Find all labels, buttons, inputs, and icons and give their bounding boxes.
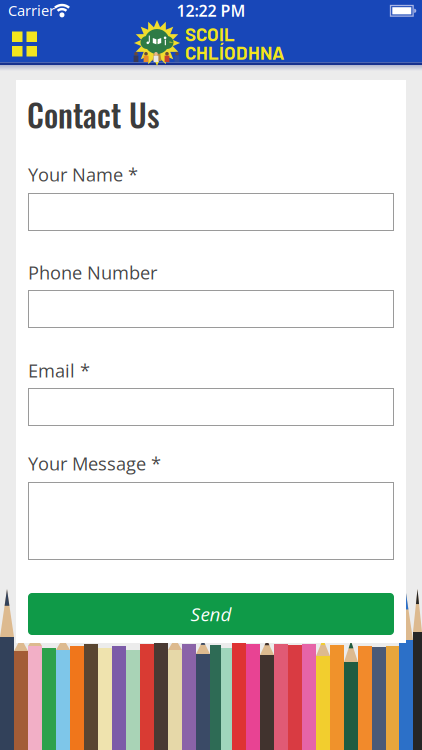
button[interactable]: Send <box>28 593 394 635</box>
button[interactable]: Menu <box>2 22 46 66</box>
button[interactable]: Email <box>28 388 394 426</box>
staticText: Send <box>190 601 231 627</box>
staticText: Your Message * <box>28 451 161 476</box>
button[interactable]: Your Message <box>28 482 394 560</box>
staticText: Email * <box>28 358 90 383</box>
staticText: Contact Us <box>27 91 160 137</box>
staticText: SCOIL <box>185 22 235 45</box>
staticText: CHLÍODHNA <box>185 41 285 63</box>
staticText: 12:22 PM <box>176 0 245 21</box>
button[interactable]: Your Name <box>28 193 394 231</box>
staticText: Your Name * <box>28 162 138 187</box>
staticText: Carrier <box>8 0 55 20</box>
staticText: Phone Number <box>28 260 157 285</box>
button[interactable]: Scoil Chlíodhna home <box>131 22 287 64</box>
button[interactable]: Phone Number <box>28 290 394 328</box>
